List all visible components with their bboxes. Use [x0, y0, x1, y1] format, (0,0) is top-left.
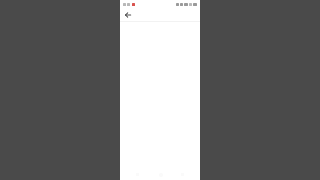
button[interactable]: Back [122, 9, 133, 20]
